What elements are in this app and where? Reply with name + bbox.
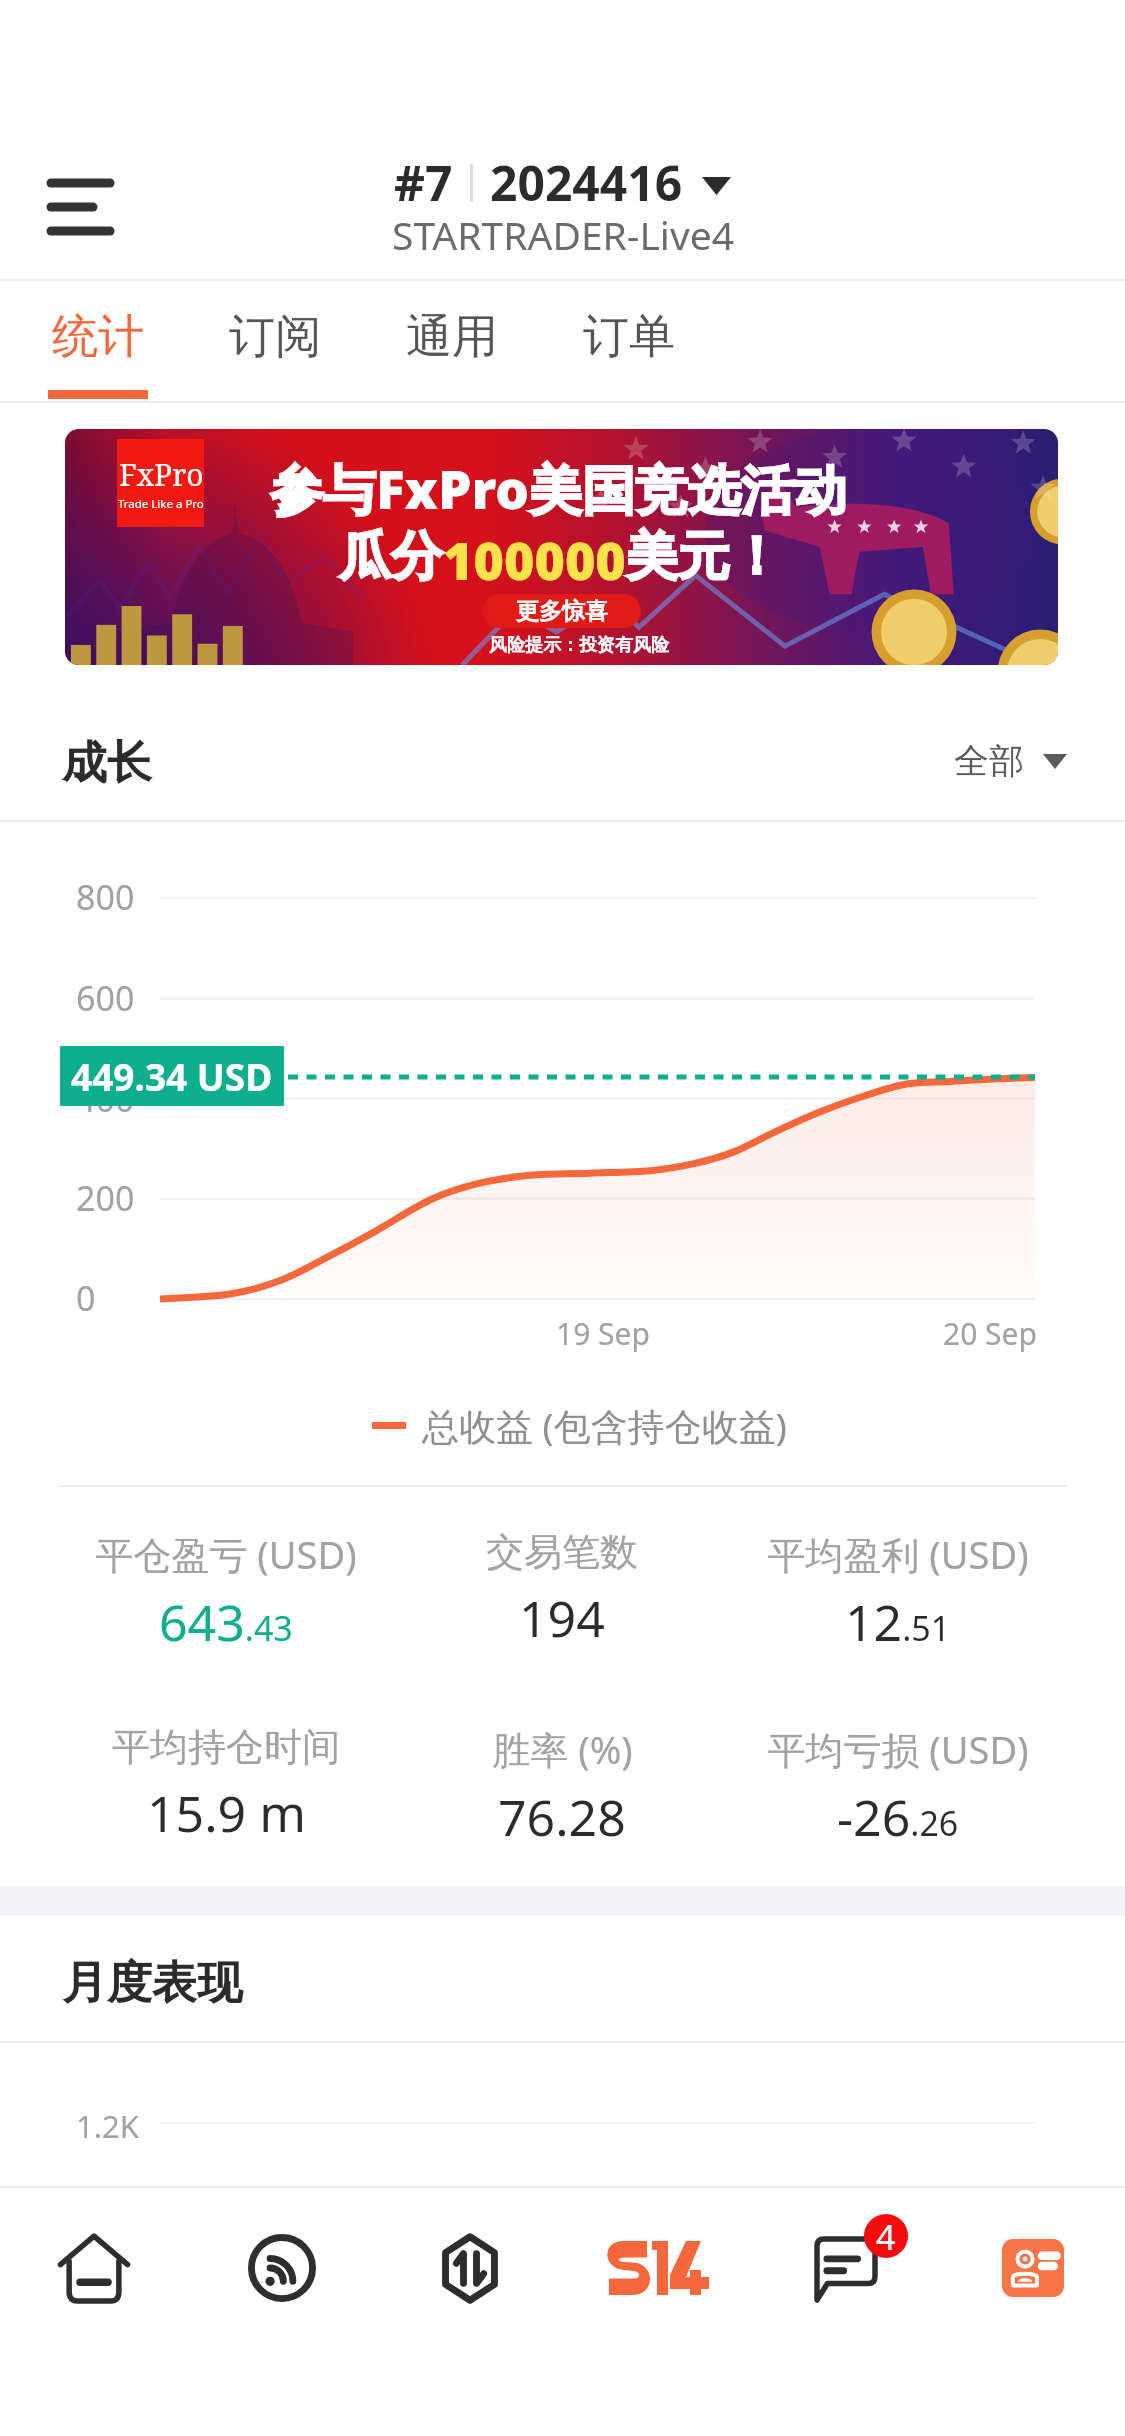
- staticText: 20 Sep: [943, 1313, 1037, 1354]
- staticText: 100000: [443, 524, 626, 595]
- staticText: 800: [76, 874, 135, 920]
- staticText: -26.26: [837, 1783, 959, 1851]
- staticText: 19 Sep: [556, 1313, 650, 1354]
- staticText: 平仓盈亏 (USD): [95, 1528, 357, 1580]
- button[interactable]: 通用: [376, 283, 528, 401]
- staticText: 643.43: [159, 1588, 293, 1656]
- button[interactable]: Signals: [188, 2188, 376, 2348]
- button[interactable]: 订阅: [199, 283, 351, 401]
- button[interactable]: 订单: [553, 283, 705, 401]
- staticText: 1.2K: [76, 2105, 139, 2147]
- button[interactable]: 统计: [22, 283, 174, 401]
- staticText: 200: [76, 1175, 135, 1221]
- button[interactable]: S14: [564, 2188, 752, 2348]
- button[interactable]: Account 2024416 STARTRADER-Live4: [360, 150, 765, 260]
- staticText: 统计: [52, 308, 144, 366]
- button[interactable]: Profile: [940, 2188, 1125, 2348]
- staticText: 交易笔数: [486, 1528, 638, 1576]
- staticText: 美元！: [626, 524, 782, 590]
- staticText: FxPro: [119, 454, 204, 495]
- button[interactable]: Menu: [35, 161, 127, 253]
- staticText: 400: [76, 1076, 135, 1122]
- button[interactable]: Trade: [376, 2188, 564, 2348]
- staticText: 参与FxPro美国竞选活动: [270, 452, 848, 524]
- button[interactable]: Messages: [752, 2188, 940, 2348]
- staticText: 成长: [62, 735, 152, 792]
- staticText: 600: [76, 975, 135, 1021]
- staticText: 平均持仓时间: [112, 1723, 340, 1771]
- staticText: 全部: [954, 739, 1024, 783]
- staticText: 月度表现: [62, 1955, 242, 2012]
- staticText: STARTRADER-Live4: [392, 208, 734, 261]
- staticText: 76.28: [498, 1783, 626, 1851]
- button[interactable]: Home: [0, 2188, 188, 2348]
- staticText: 订阅: [229, 308, 321, 366]
- staticText: 194: [519, 1584, 605, 1652]
- staticText: 风险提示：投资有风险: [489, 634, 669, 657]
- staticText: 总收益 (包含持仓收益): [422, 1400, 787, 1451]
- staticText: 瓜分: [339, 524, 443, 590]
- staticText: 449.34 USD: [71, 1051, 273, 1101]
- button[interactable]: 全部: [954, 739, 1067, 783]
- staticText: 平均亏损 (USD): [767, 1723, 1029, 1775]
- staticText: 0: [76, 1275, 96, 1321]
- staticText: Trade Like a Pro: [118, 496, 204, 512]
- staticText: 2024416: [490, 150, 683, 215]
- button[interactable]: FxPro: [65, 429, 1058, 665]
- staticText: 平均盈利 (USD): [767, 1528, 1029, 1580]
- staticText: 12.51: [845, 1588, 951, 1656]
- staticText: 通用: [406, 308, 498, 366]
- staticText: 4: [876, 2214, 896, 2258]
- staticText: 订单: [583, 308, 675, 366]
- staticText: #7: [394, 150, 453, 215]
- staticText: 15.9 m: [147, 1779, 306, 1847]
- staticText: 更多惊喜: [516, 597, 608, 626]
- staticText: 胜率 (%): [492, 1723, 633, 1775]
